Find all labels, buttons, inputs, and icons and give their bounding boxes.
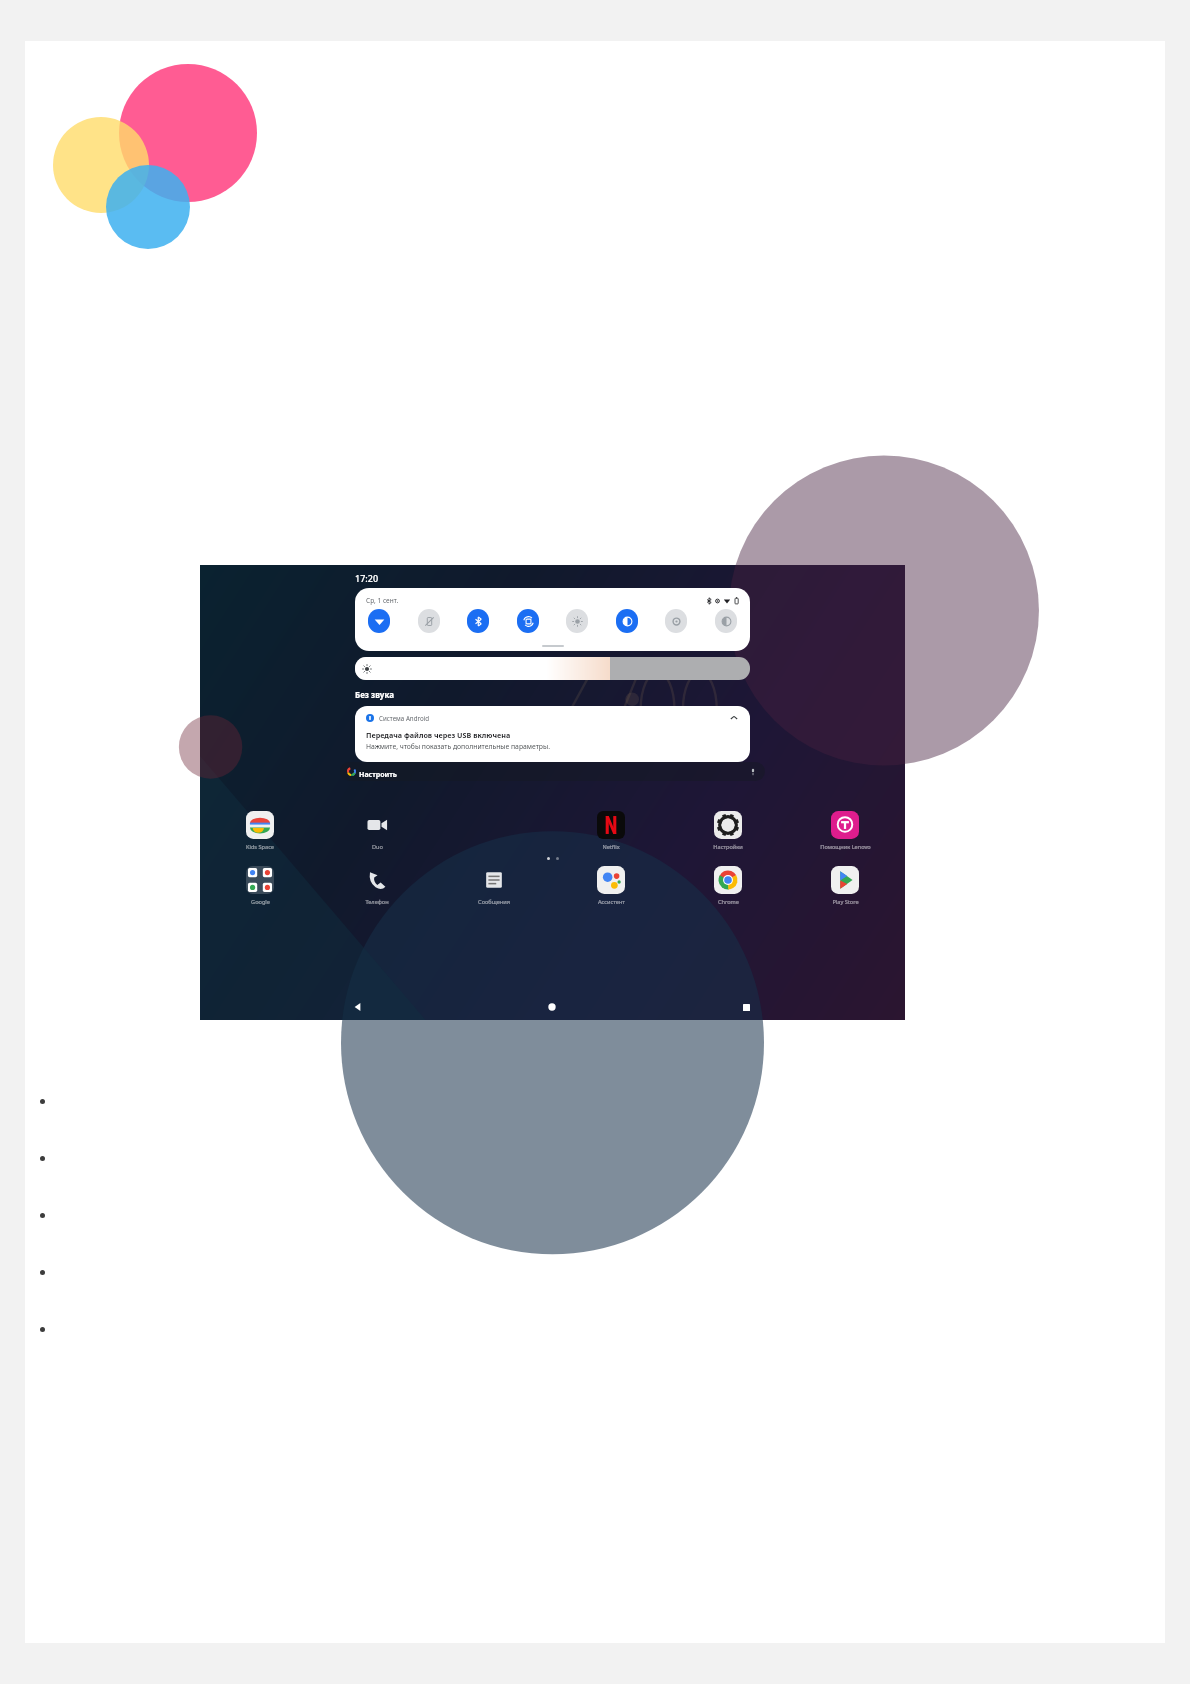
staticText: Kids Space	[246, 843, 274, 851]
staticText: Ассистент	[598, 898, 625, 906]
button[interactable]: Play Store	[815, 866, 875, 906]
staticText: Google	[251, 898, 270, 906]
staticText: Сообщения	[478, 898, 510, 906]
staticText: Нажмите, чтобы показать дополнительные п…	[366, 742, 550, 751]
staticText: Настроить	[359, 770, 397, 780]
staticText: Помощник Lenovo	[820, 843, 871, 851]
button[interactable]: Contrast	[715, 609, 737, 633]
button[interactable]: Помощник Lenovo	[815, 811, 875, 851]
button[interactable]: Ср, 1 сент.	[355, 588, 750, 651]
button[interactable]: Ассистент	[581, 866, 641, 906]
button[interactable]: Back	[345, 994, 371, 1020]
button[interactable]: Duo	[347, 811, 407, 851]
staticText: Duo	[372, 843, 383, 851]
button[interactable]: Brightness slider	[355, 657, 750, 680]
button[interactable]: Kids Space	[230, 811, 290, 851]
staticText: 17:20	[355, 572, 379, 584]
button[interactable]: Eye care	[665, 609, 687, 633]
button[interactable]: Home	[539, 994, 565, 1020]
button[interactable]: Настроить	[340, 762, 765, 781]
button[interactable]: Wi-Fi	[368, 609, 390, 633]
button[interactable]: Bluetooth	[467, 609, 489, 633]
button[interactable]: Google	[230, 866, 290, 906]
staticText: Netflix	[602, 843, 620, 851]
button[interactable]: Dark theme	[616, 609, 638, 633]
button[interactable]: Collapse	[729, 713, 739, 723]
button[interactable]: Система Android	[355, 706, 750, 762]
staticText: Play Store	[832, 898, 859, 906]
button[interactable]: Настройки	[698, 811, 758, 851]
staticText: Chrome	[718, 898, 739, 906]
button[interactable]: Netflix	[581, 811, 641, 851]
staticText: Система Android	[379, 714, 430, 722]
button[interactable]	[464, 811, 524, 839]
staticText: Настройки	[713, 843, 743, 851]
button[interactable]: Auto-rotate	[517, 609, 539, 633]
staticText: Без звука	[355, 689, 394, 700]
button[interactable]: Сообщения	[464, 866, 524, 906]
staticText: Ср, 1 сент.	[366, 596, 399, 605]
staticText: Передача файлов через USB включена	[366, 730, 511, 740]
button[interactable]: Chrome	[698, 866, 758, 906]
button[interactable]: Телефон	[347, 866, 407, 906]
button[interactable]: Recents	[733, 994, 759, 1020]
button[interactable]: Brightness	[566, 609, 588, 633]
staticText: Телефон	[365, 898, 389, 906]
button[interactable]: Vibrate off	[418, 609, 440, 633]
